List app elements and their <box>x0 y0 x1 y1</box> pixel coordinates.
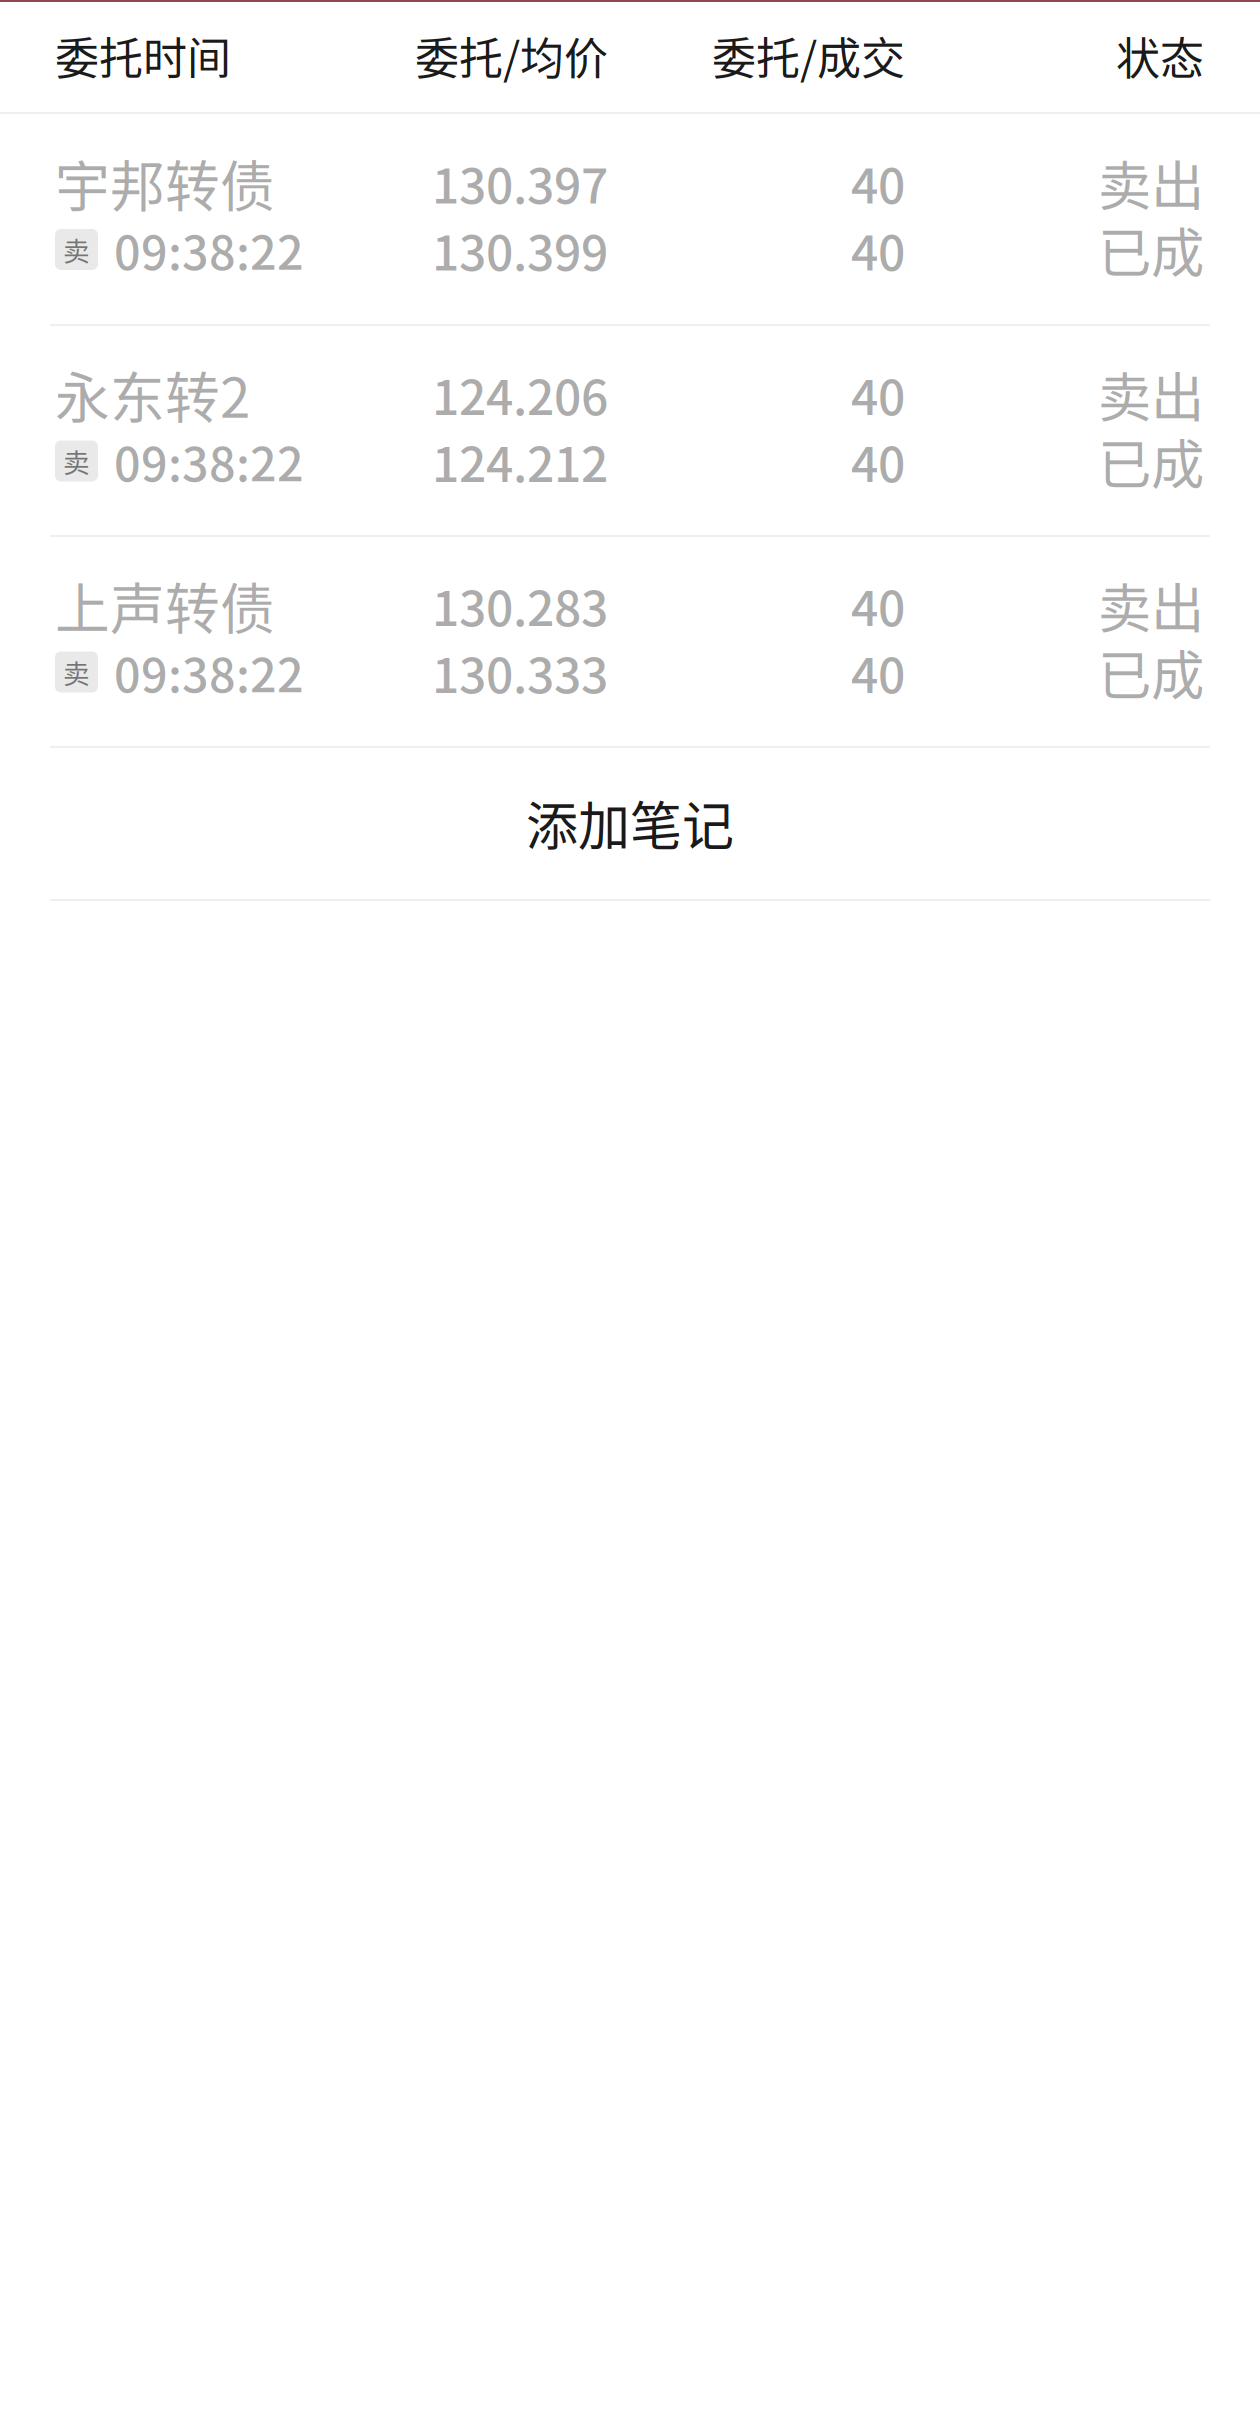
staticText: 卖出 <box>1098 355 1204 433</box>
staticText: 09:38:22 <box>114 427 304 495</box>
staticText: 卖 <box>63 442 90 480</box>
staticText: 卖 <box>63 230 90 269</box>
staticText: 已成 <box>1098 422 1204 500</box>
staticText: 124.212 <box>432 426 608 496</box>
staticText: 添加笔记 <box>526 785 734 860</box>
staticText: 卖出 <box>1098 144 1204 221</box>
staticText: 09:38:22 <box>114 216 304 283</box>
button[interactable]: 宇邦转债 <box>0 114 1260 324</box>
staticText: 130.333 <box>432 637 608 707</box>
staticText: 卖 <box>63 653 90 691</box>
staticText: 40 <box>851 148 905 217</box>
staticText: 已成 <box>1098 633 1204 711</box>
staticText: 130.397 <box>432 148 608 217</box>
staticText: 40 <box>851 426 905 496</box>
button[interactable]: 永东转2 <box>0 326 1260 535</box>
staticText: 永东转2 <box>55 354 250 434</box>
staticText: 状态 <box>1116 24 1204 87</box>
staticText: 130.399 <box>432 215 608 284</box>
button[interactable]: 上声转债 <box>0 537 1260 746</box>
staticText: 40 <box>851 637 905 707</box>
button[interactable]: 添加笔记 <box>0 748 1260 899</box>
staticText: 09:38:22 <box>114 638 304 706</box>
staticText: 40 <box>851 570 905 640</box>
staticText: 上声转债 <box>55 565 275 645</box>
staticText: 委托/成交 <box>712 24 905 87</box>
staticText: 已成 <box>1098 211 1204 288</box>
staticText: 40 <box>851 215 905 284</box>
staticText: 宇邦转债 <box>55 143 275 222</box>
staticText: 130.283 <box>432 570 608 640</box>
staticText: 卖出 <box>1098 566 1204 644</box>
staticText: 委托/均价 <box>415 24 608 87</box>
staticText: 委托时间 <box>55 24 231 87</box>
staticText: 124.206 <box>432 359 608 429</box>
staticText: 40 <box>851 359 905 429</box>
